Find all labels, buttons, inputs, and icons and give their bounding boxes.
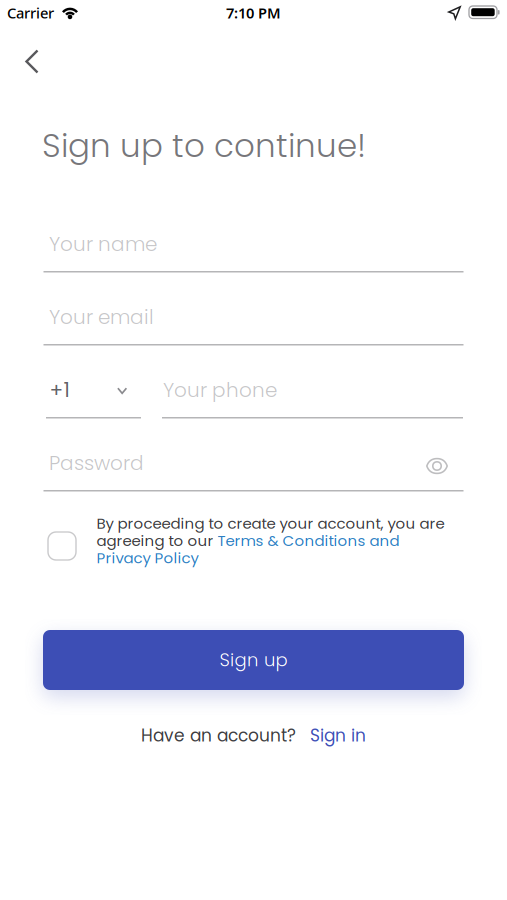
staticText: Your phone: [163, 376, 277, 404]
button[interactable]: Back: [15, 39, 49, 84]
button[interactable]: Show password: [420, 451, 454, 481]
staticText: Your name: [49, 230, 157, 258]
button[interactable]: Password: [43, 449, 463, 492]
staticText: Password: [49, 449, 144, 477]
staticText: Privacy Policy: [96, 548, 198, 569]
button[interactable]: Country code +1: [44, 376, 141, 419]
staticText: 7:10 PM: [226, 3, 281, 22]
staticText: Sign up to continue!: [42, 123, 366, 168]
button[interactable]: Your name: [43, 230, 463, 273]
staticText: Terms & Conditions and: [217, 530, 399, 551]
button[interactable]: Sign in: [310, 724, 366, 747]
staticText: +1: [49, 376, 69, 404]
button[interactable]: Privacy Policy: [96, 548, 198, 569]
staticText: Sign in: [310, 724, 366, 747]
staticText: By proceeding to create your account, yo…: [96, 513, 444, 534]
staticText: Have an account?: [141, 724, 296, 747]
staticText: Carrier: [7, 3, 54, 22]
button[interactable]: Your email: [43, 303, 463, 346]
staticText: Your email: [49, 303, 154, 331]
staticText: agreeing to our: [96, 530, 217, 551]
button[interactable]: Your phone: [162, 376, 463, 419]
staticText: Sign up: [219, 647, 287, 673]
button[interactable]: Agree to terms: [44, 528, 80, 564]
button[interactable]: Terms & Conditions and: [217, 530, 399, 551]
button[interactable]: Sign up: [43, 630, 464, 690]
